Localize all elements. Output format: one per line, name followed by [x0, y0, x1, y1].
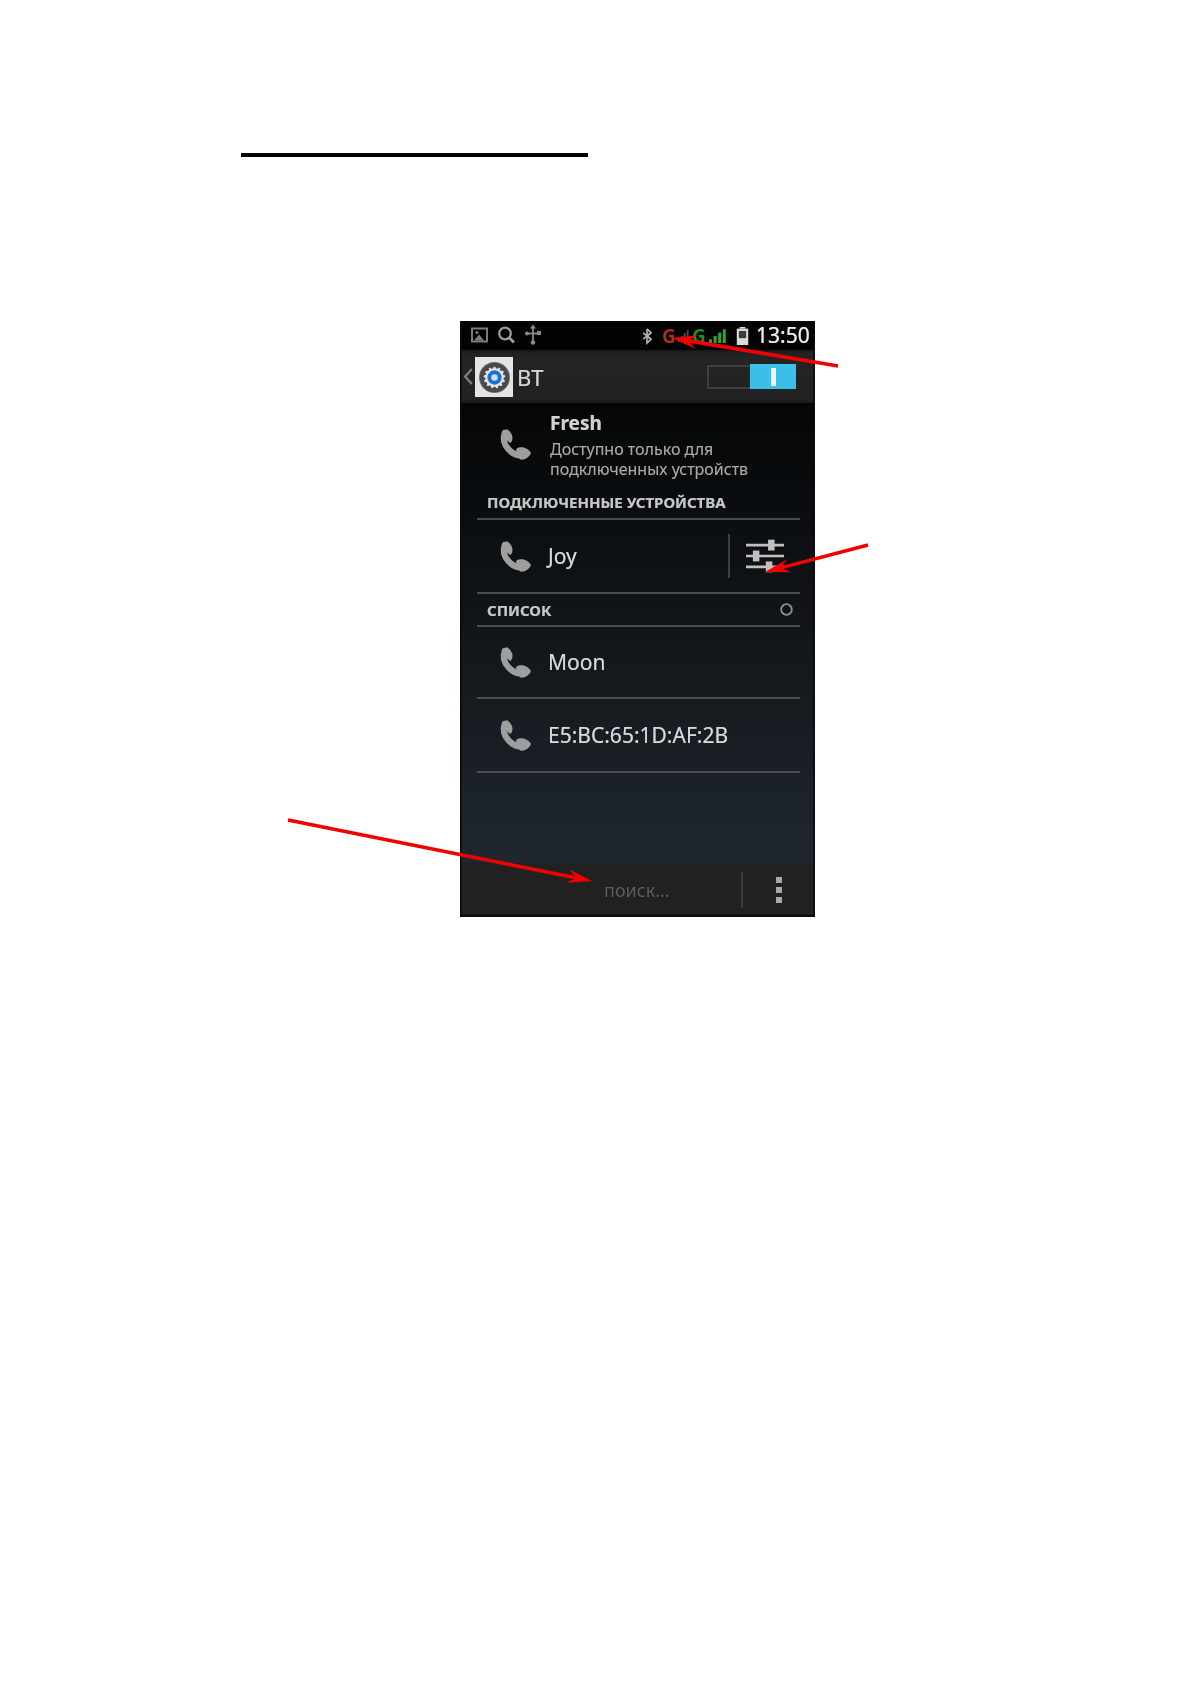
staticText: Moon: [548, 648, 606, 677]
staticText: Joy: [548, 542, 577, 571]
staticText: Fresh: [550, 410, 602, 436]
button[interactable]: Device settings: [730, 520, 800, 592]
button[interactable]: More options: [743, 863, 815, 917]
staticText: ПОДКЛЮЧЕННЫЕ УСТРОЙСТВА: [487, 492, 726, 512]
staticText: СПИСОК: [487, 600, 552, 620]
button[interactable]: E5:BC:65:1D:AF:2B: [460, 699, 815, 771]
staticText: G: [662, 323, 676, 349]
staticText: G: [692, 323, 706, 349]
staticText: Доступно только для подключенных устройс…: [550, 438, 749, 479]
button[interactable]: поиск...: [460, 863, 741, 917]
button[interactable]: Fresh: [460, 403, 815, 485]
staticText: BT: [517, 362, 544, 392]
button[interactable]: Moon: [460, 627, 815, 697]
button[interactable]: Back: [462, 350, 513, 403]
button[interactable]: Joy: [460, 520, 815, 592]
staticText: E5:BC:65:1D:AF:2B: [548, 721, 729, 750]
staticText: 13:50: [756, 321, 810, 350]
staticText: поиск...: [604, 878, 670, 903]
button[interactable]: Bluetooth on/off: [707, 364, 796, 389]
